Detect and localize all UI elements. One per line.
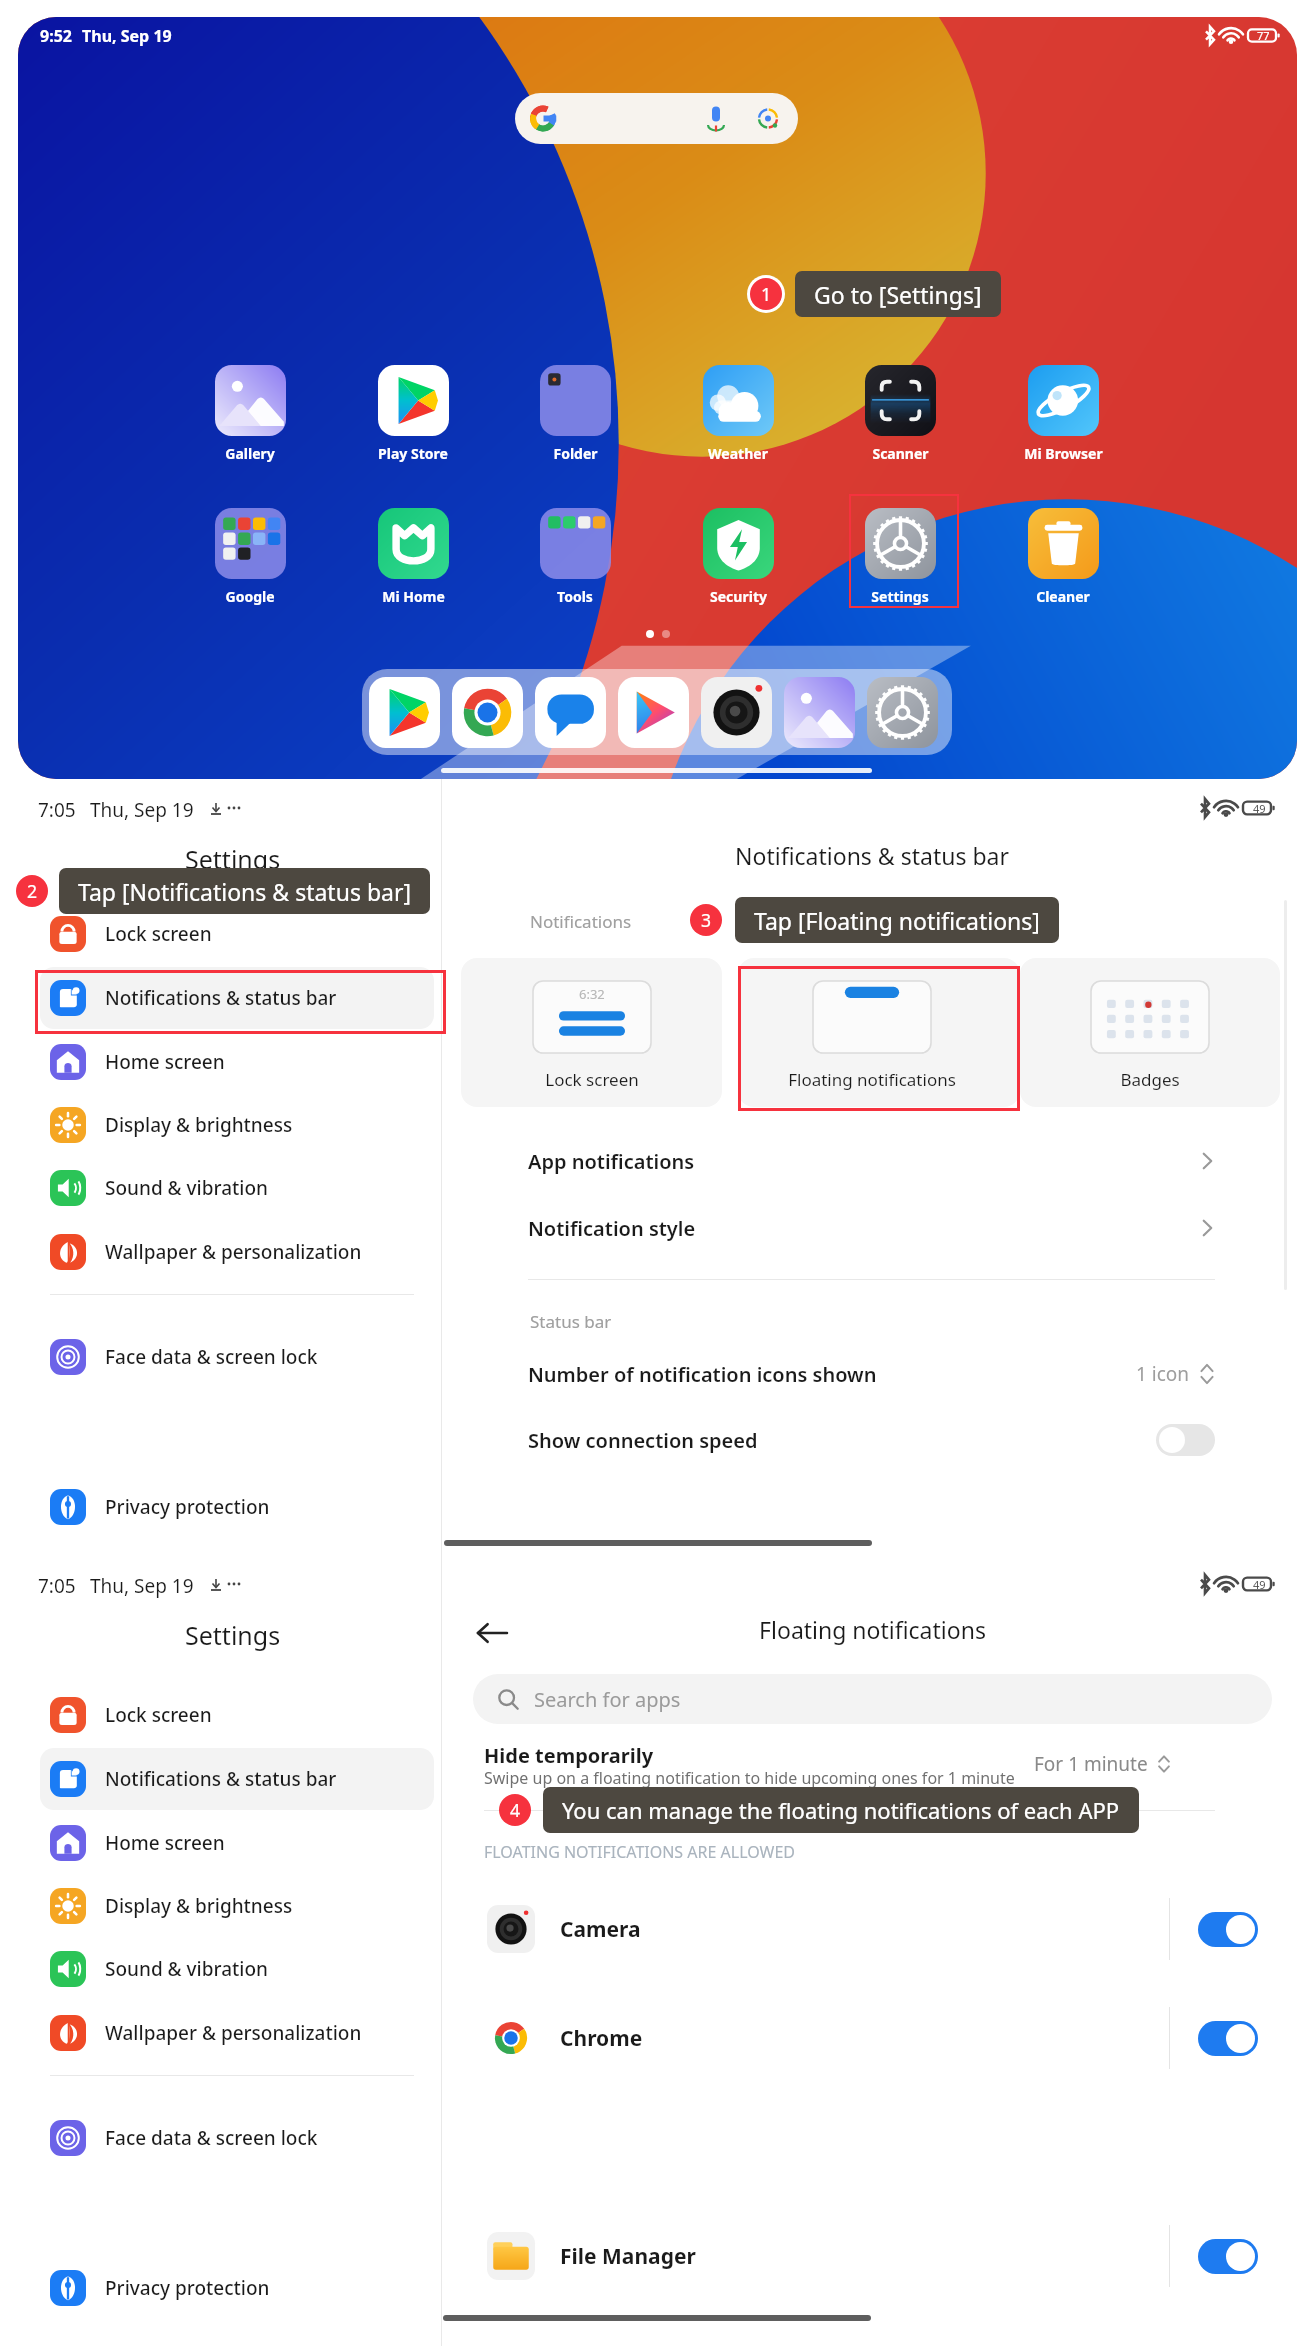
- staticText: Notification style: [528, 1215, 696, 1242]
- button[interactable]: Notification style: [528, 1206, 1215, 1250]
- button[interactable]: Chrome: [452, 677, 523, 748]
- staticText: Gallery: [225, 444, 275, 463]
- button[interactable]: Gallery: [784, 677, 855, 748]
- staticText: Play Store: [378, 444, 448, 463]
- button[interactable]: Toggle floating notifications for File M…: [1198, 2239, 1258, 2274]
- staticText: Notifications & status bar: [105, 985, 337, 1011]
- staticText: Notifications & status bar: [735, 840, 1009, 871]
- button[interactable]: Privacy protection: [40, 2257, 434, 2319]
- button[interactable]: Lock screen: [40, 903, 434, 965]
- button[interactable]: Camera: [487, 1898, 1258, 1960]
- staticText: Notifications & status bar: [105, 1766, 337, 1792]
- button[interactable]: [461, 958, 722, 1107]
- button[interactable]: Toggle floating notifications for Camera: [1198, 1912, 1258, 1947]
- staticText: Lock screen: [105, 921, 212, 947]
- button[interactable]: Home screen: [40, 1812, 434, 1874]
- button[interactable]: Face data & screen lock: [40, 2107, 434, 2169]
- button[interactable]: Lock screen: [40, 1684, 434, 1746]
- staticText: 9:52: [40, 25, 72, 47]
- button[interactable]: Show connection speed toggle: [1156, 1424, 1215, 1456]
- staticText: Number of notification icons shown: [528, 1361, 877, 1388]
- button[interactable]: Wallpaper & personalization: [40, 1221, 434, 1283]
- staticText: Camera: [560, 1915, 641, 1944]
- button[interactable]: Chrome: [487, 2007, 1258, 2069]
- button[interactable]: Camera: [701, 677, 772, 748]
- button[interactable]: Google search: [515, 93, 798, 144]
- button[interactable]: Search for apps: [473, 1674, 1272, 1724]
- staticText: Thu, Sep 19: [90, 797, 194, 823]
- button[interactable]: Back: [470, 1611, 514, 1655]
- staticText: For 1 minute: [1034, 1751, 1148, 1777]
- button[interactable]: Privacy protection: [40, 1476, 434, 1538]
- button[interactable]: Toggle floating notifications for Chrome: [1198, 2021, 1258, 2056]
- button[interactable]: App notifications: [528, 1139, 1215, 1183]
- staticText: Scanner: [872, 444, 929, 463]
- staticText: Tap [Notifications & status bar]: [78, 876, 411, 907]
- button[interactable]: Wallpaper & personalization: [40, 2002, 434, 2064]
- staticText: Show connection speed: [528, 1427, 758, 1454]
- button[interactable]: Notifications & status bar: [40, 1748, 434, 1810]
- staticText: Mi Browser: [1024, 444, 1103, 463]
- button[interactable]: Number of notification icons shown: [528, 1352, 1215, 1396]
- staticText: Go to [Settings]: [814, 279, 982, 310]
- staticText: 49: [1253, 801, 1266, 816]
- staticText: Display & brightness: [105, 1112, 293, 1138]
- staticText: 77: [1257, 28, 1270, 43]
- button[interactable]: Sound & vibration: [40, 1157, 434, 1219]
- staticText: Notifications: [530, 910, 632, 933]
- staticText: Sound & vibration: [105, 1175, 268, 1201]
- button[interactable]: Play Store: [369, 677, 440, 748]
- button[interactable]: Settings: [850, 508, 950, 606]
- button[interactable]: Sound & vibration: [40, 1938, 434, 2000]
- staticText: Lock screen: [105, 1702, 212, 1728]
- button[interactable]: Play Store: [363, 365, 463, 463]
- button[interactable]: Scanner: [850, 365, 950, 463]
- staticText: Tap [Floating notifications]: [754, 905, 1040, 936]
- staticText: Settings: [871, 587, 929, 606]
- button[interactable]: Tools: [525, 508, 625, 606]
- button[interactable]: Folder: [525, 365, 625, 463]
- button[interactable]: Notifications & status bar: [40, 967, 434, 1029]
- button[interactable]: File Manager: [487, 2225, 1258, 2287]
- staticText: Privacy protection: [105, 1494, 270, 1520]
- staticText: Thu, Sep 19: [90, 1573, 194, 1599]
- button[interactable]: Mi Video: [618, 677, 689, 748]
- button[interactable]: Weather: [688, 365, 788, 463]
- staticText: Thu, Sep 19: [82, 25, 172, 47]
- staticText: Floating notifications: [788, 1068, 956, 1091]
- button[interactable]: Settings: [867, 677, 938, 748]
- staticText: Tools: [557, 587, 593, 606]
- staticText: 1: [761, 282, 772, 306]
- staticText: Privacy protection: [105, 2275, 270, 2301]
- staticText: App notifications: [528, 1148, 695, 1175]
- staticText: 4: [510, 1798, 521, 1822]
- staticText: Chrome: [560, 2024, 643, 2053]
- button[interactable]: For 1 minute: [1034, 1751, 1171, 1777]
- staticText: 7:05: [38, 797, 76, 823]
- staticText: Sound & vibration: [105, 1956, 268, 1982]
- button[interactable]: Security: [688, 508, 788, 606]
- staticText: Google: [225, 587, 275, 606]
- button[interactable]: Mi Home: [363, 508, 463, 606]
- staticText: Floating notifications: [759, 1614, 986, 1645]
- staticText: Swipe up on a floating notification to h…: [484, 1767, 1015, 1789]
- button[interactable]: Display & brightness: [40, 1875, 434, 1937]
- button[interactable]: [738, 958, 1020, 1107]
- button[interactable]: Home screen: [40, 1031, 434, 1093]
- button[interactable]: Mi Browser: [1013, 365, 1113, 463]
- button[interactable]: Cleaner: [1013, 508, 1113, 606]
- staticText: Hide temporarily: [484, 1742, 654, 1769]
- button[interactable]: Display & brightness: [40, 1094, 434, 1156]
- staticText: Wallpaper & personalization: [105, 1239, 362, 1265]
- button[interactable]: Messages: [535, 677, 606, 748]
- staticText: Mi Home: [382, 587, 445, 606]
- staticText: FLOATING NOTIFICATIONS ARE ALLOWED: [484, 1841, 795, 1863]
- button[interactable]: Face data & screen lock: [40, 1326, 434, 1388]
- button[interactable]: [1020, 958, 1280, 1107]
- staticText: You can manage the floating notification…: [562, 1795, 1120, 1825]
- staticText: Face data & screen lock: [105, 2125, 318, 2151]
- button[interactable]: Gallery: [200, 365, 300, 463]
- button[interactable]: Show connection speed: [528, 1418, 1215, 1462]
- staticText: Home screen: [105, 1049, 225, 1075]
- button[interactable]: Google: [200, 508, 300, 606]
